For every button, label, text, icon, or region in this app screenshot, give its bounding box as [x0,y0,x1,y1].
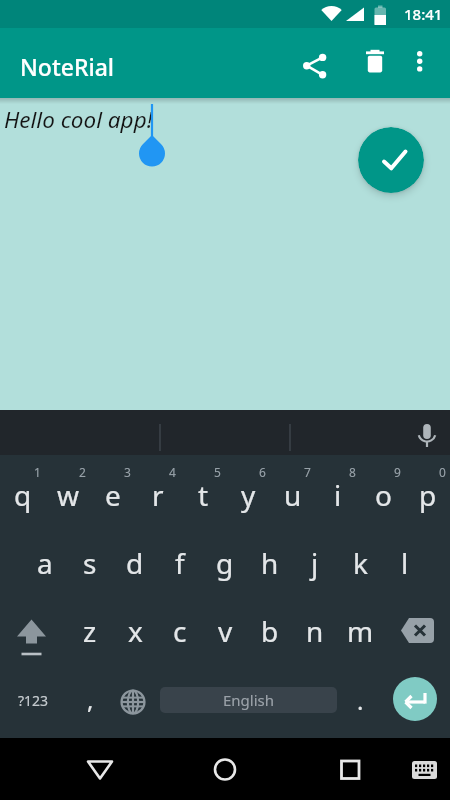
staticText: o [375,476,392,514]
staticText: p [419,476,437,514]
button[interactable]: u [271,473,315,517]
staticText: NoteRial [20,51,115,82]
button[interactable]: m [338,609,382,653]
staticText: 4 [169,464,176,480]
staticText: English [223,690,275,710]
button[interactable]: k [338,541,382,585]
staticText: . [357,684,364,717]
staticText: n [306,612,324,650]
button[interactable]: English [160,687,337,713]
staticText: z [83,612,97,650]
button[interactable] [111,678,155,722]
button[interactable]: r [136,473,180,517]
button[interactable]: s [68,541,112,585]
button[interactable]: f [158,541,202,585]
button[interactable]: h [248,541,292,585]
staticText: x [128,612,143,650]
staticText: 0 [439,464,446,480]
staticText: m [347,612,374,650]
staticText: u [284,476,302,514]
button[interactable] [396,39,444,87]
button[interactable]: . [338,678,382,722]
button[interactable] [351,39,399,87]
staticText: 3 [124,464,131,480]
staticText: w [57,476,80,514]
button[interactable] [393,677,437,721]
button[interactable]: l [383,541,427,585]
button[interactable]: b [248,609,292,653]
staticText: k [353,544,368,582]
button[interactable] [76,745,124,793]
staticText: 8 [349,464,356,480]
staticText: j [311,544,319,582]
button[interactable]: p [406,473,450,517]
button[interactable]: g [203,541,247,585]
button[interactable]: , [68,677,112,721]
staticText: i [334,476,342,514]
button[interactable]: j [293,541,337,585]
button[interactable]: e [91,473,135,517]
button[interactable]: i [316,473,360,517]
staticText: b [261,612,279,650]
button[interactable] [358,127,424,193]
staticText: 18:41 [404,4,443,24]
button[interactable]: c [158,609,202,653]
staticText: s [83,544,97,582]
staticText: l [401,544,409,582]
staticText: 6 [259,464,266,480]
button[interactable] [10,609,54,653]
button[interactable]: ?123 [11,678,55,722]
staticText: Hello cool app! [4,104,153,135]
staticText: c [173,612,187,650]
button[interactable]: z [68,609,112,653]
staticText: h [261,544,279,582]
button[interactable]: v [203,609,247,653]
staticText: t [198,476,209,514]
button[interactable] [292,39,340,87]
button[interactable]: o [361,473,405,517]
button[interactable]: q [1,473,45,517]
button[interactable]: a [23,541,67,585]
staticText: 9 [394,464,401,480]
button[interactable] [404,752,444,792]
staticText: 7 [304,464,311,480]
staticText: 1 [34,464,41,480]
staticText: 5 [214,464,221,480]
button[interactable] [326,745,374,793]
button[interactable]: t [181,473,225,517]
staticText: ?123 [18,691,49,710]
staticText: 2 [79,464,86,480]
button[interactable] [201,745,249,793]
staticText: a [37,544,53,582]
staticText: g [216,544,234,582]
button[interactable] [396,609,440,653]
button[interactable]: x [113,609,157,653]
button[interactable]: d [113,541,157,585]
staticText: y [241,476,256,514]
button[interactable]: y [226,473,270,517]
staticText: e [105,476,121,514]
staticText: q [14,476,32,514]
button[interactable]: w [46,473,90,517]
staticText: f [175,544,185,582]
staticText: , [87,683,94,716]
staticText: v [218,612,233,650]
staticText: d [126,544,144,582]
staticText: r [152,476,164,514]
button[interactable]: n [293,609,337,653]
